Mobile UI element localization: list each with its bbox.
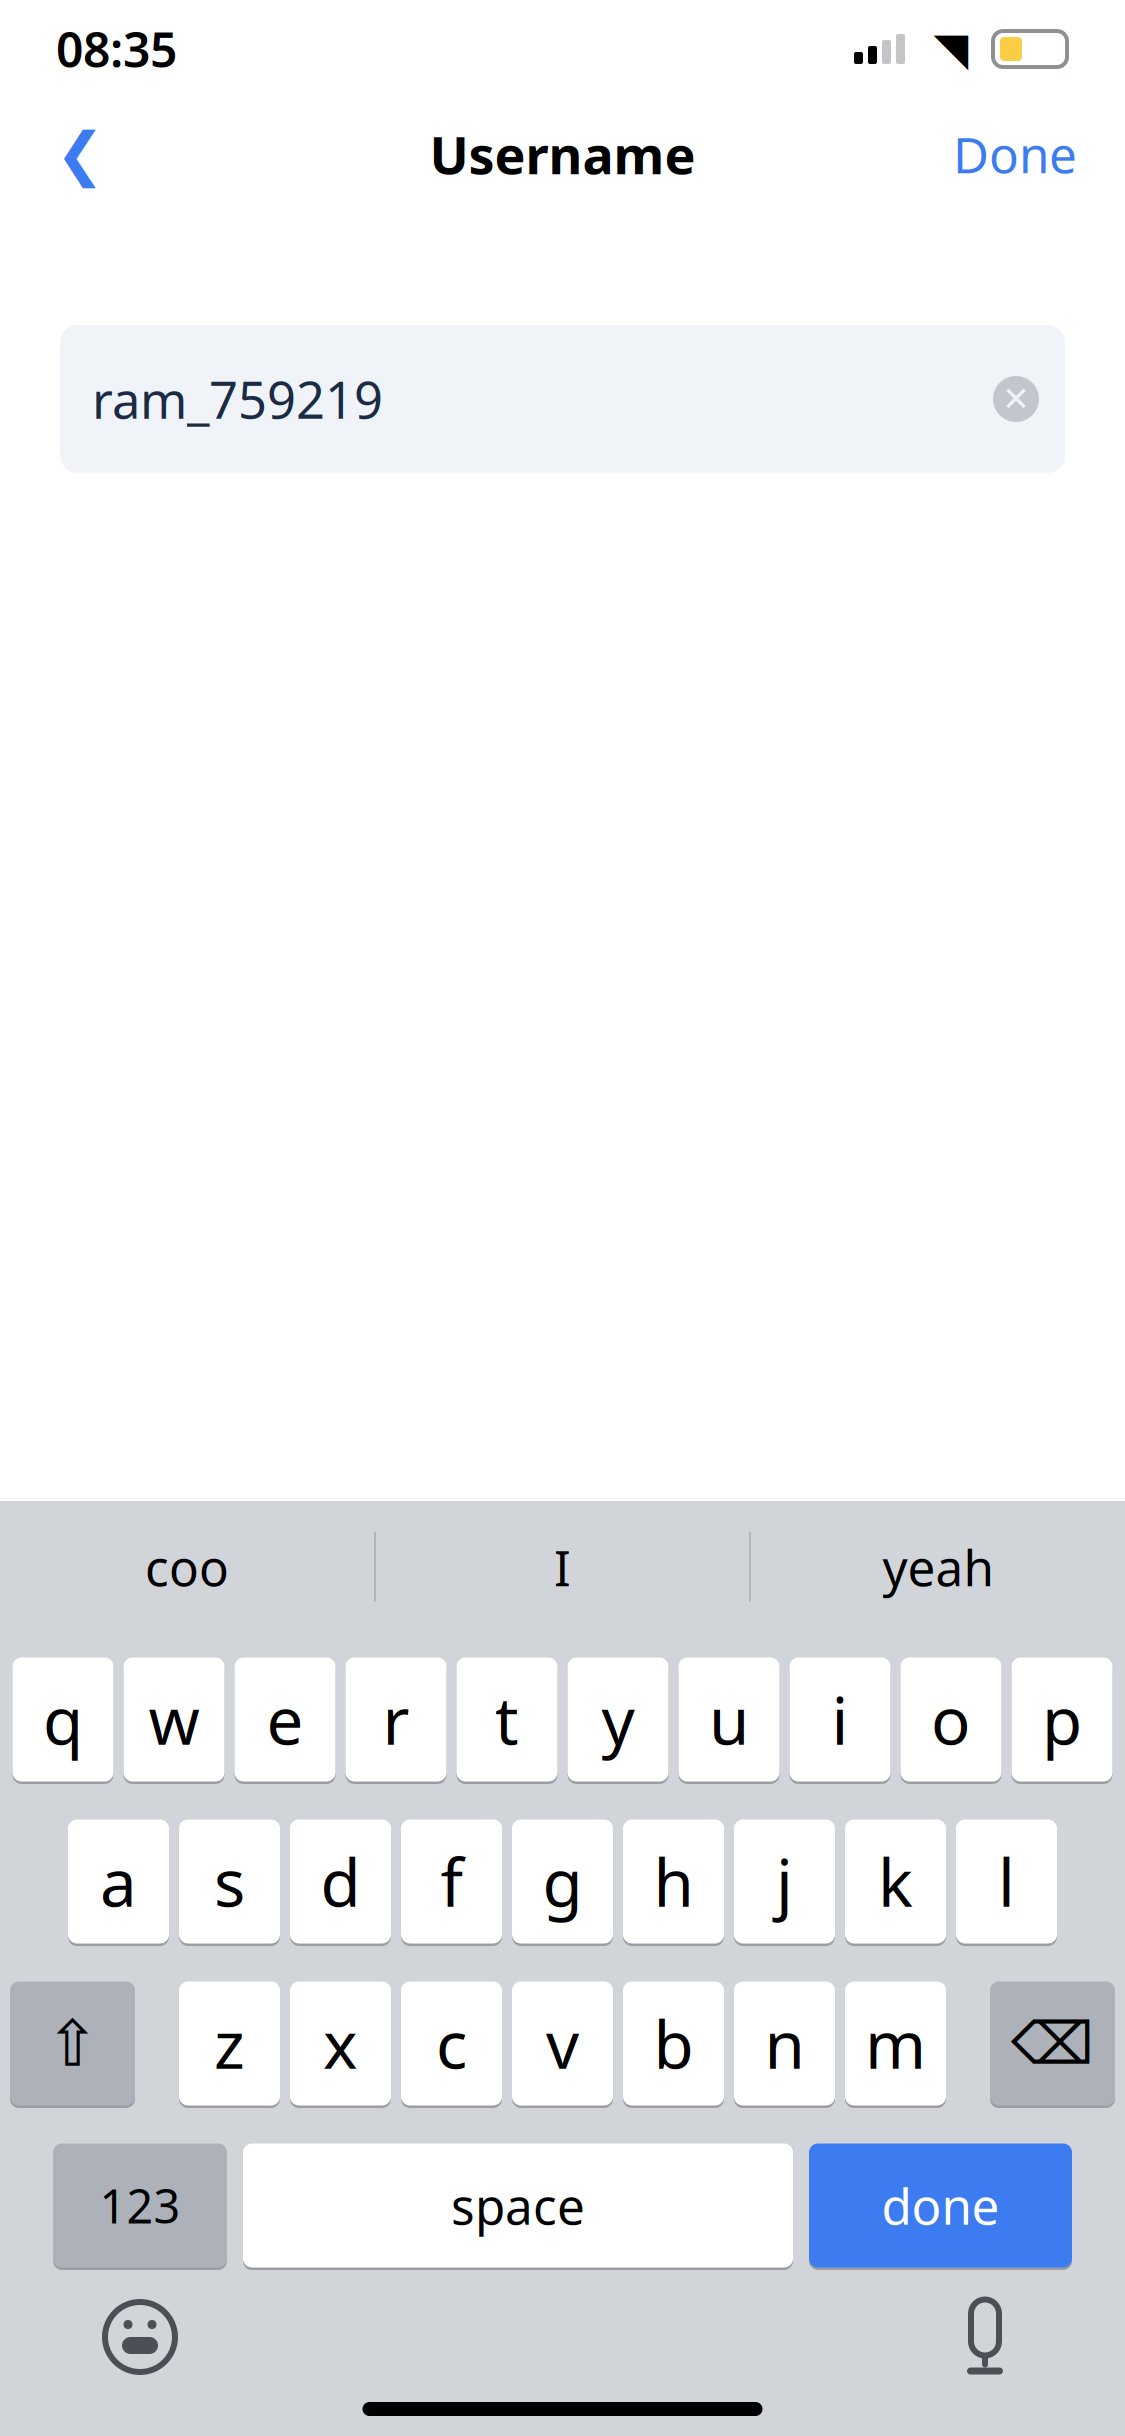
staticText: x [323, 2000, 358, 2087]
staticText: ⇧ [45, 2007, 99, 2080]
staticText: u [709, 1676, 749, 1763]
staticText: coo [145, 1534, 229, 1600]
staticText: w [148, 1676, 199, 1763]
staticText: b [653, 2000, 693, 2087]
staticText: I [554, 1534, 571, 1600]
button[interactable]: c [401, 1979, 502, 2108]
button[interactable]: y [567, 1655, 668, 1784]
button[interactable]: Back [32, 106, 128, 202]
staticText: f [440, 1838, 462, 1925]
staticText: t [495, 1676, 519, 1763]
staticText: ❮ [55, 121, 104, 187]
button[interactable]: n [734, 1979, 835, 2108]
staticText: y [601, 1676, 634, 1763]
staticText: d [320, 1838, 360, 1925]
staticText: p [1042, 1676, 1082, 1763]
staticText: ◥ [933, 23, 968, 75]
button[interactable]: Dictation [935, 2287, 1035, 2387]
button[interactable]: Shift [10, 1979, 135, 2108]
button[interactable]: space [243, 2141, 793, 2270]
button[interactable]: coo [0, 1501, 374, 1633]
button[interactable]: d [290, 1817, 391, 1946]
staticText: i [831, 1676, 848, 1763]
button[interactable]: t [456, 1655, 557, 1784]
staticText: k [878, 1838, 913, 1925]
button[interactable]: 123 [53, 2141, 227, 2270]
staticText: yeah [882, 1534, 993, 1600]
staticText: m [865, 2000, 926, 2087]
staticText: ✕ [1002, 380, 1030, 418]
button[interactable]: k [845, 1817, 946, 1946]
button[interactable]: a [68, 1817, 169, 1946]
button[interactable]: p [1011, 1655, 1112, 1784]
staticText: o [931, 1676, 971, 1763]
button[interactable]: z [179, 1979, 280, 2108]
button[interactable]: Clear text [983, 366, 1049, 432]
staticText: Username [429, 119, 695, 189]
button[interactable]: o [900, 1655, 1001, 1784]
staticText: 08:35 [56, 17, 177, 81]
staticText: c [436, 2000, 467, 2087]
button[interactable]: x [290, 1979, 391, 2108]
button[interactable]: b [623, 1979, 724, 2108]
staticText: a [100, 1838, 137, 1925]
button[interactable]: I [376, 1501, 749, 1633]
staticText: q [43, 1676, 83, 1763]
staticText: n [764, 2000, 804, 2087]
staticText: g [542, 1838, 582, 1925]
staticText: j [776, 1838, 793, 1925]
button[interactable]: s [179, 1817, 280, 1946]
staticText: s [214, 1838, 245, 1925]
button[interactable]: Done [937, 106, 1093, 202]
staticText: done [881, 2173, 999, 2238]
button[interactable]: m [845, 1979, 946, 2108]
button[interactable]: done [809, 2141, 1072, 2270]
staticText: 123 [99, 2174, 180, 2236]
button[interactable]: u [678, 1655, 779, 1784]
staticText: r [382, 1676, 409, 1763]
button[interactable]: yeah [751, 1501, 1125, 1633]
button[interactable]: j [734, 1817, 835, 1946]
staticText: ram_759219 [92, 365, 383, 433]
button[interactable]: i [789, 1655, 890, 1784]
button[interactable]: h [623, 1817, 724, 1946]
button[interactable]: v [512, 1979, 613, 2108]
staticText: z [214, 2000, 245, 2087]
button[interactable]: w [123, 1655, 224, 1784]
button[interactable]: q [12, 1655, 113, 1784]
button[interactable]: l [956, 1817, 1057, 1946]
staticText: e [266, 1676, 303, 1763]
button[interactable]: Delete [990, 1979, 1115, 2108]
staticText: v [546, 2000, 579, 2087]
button[interactable]: g [512, 1817, 613, 1946]
button[interactable]: f [401, 1817, 502, 1946]
staticText: h [653, 1838, 693, 1925]
staticText: ⌫ [1011, 2010, 1094, 2077]
button[interactable]: r [345, 1655, 446, 1784]
staticText: l [998, 1838, 1015, 1925]
button[interactable]: Emoji keyboard [90, 2287, 190, 2387]
button[interactable]: e [234, 1655, 335, 1784]
staticText: Done [953, 121, 1077, 187]
staticText: space [451, 2173, 585, 2238]
